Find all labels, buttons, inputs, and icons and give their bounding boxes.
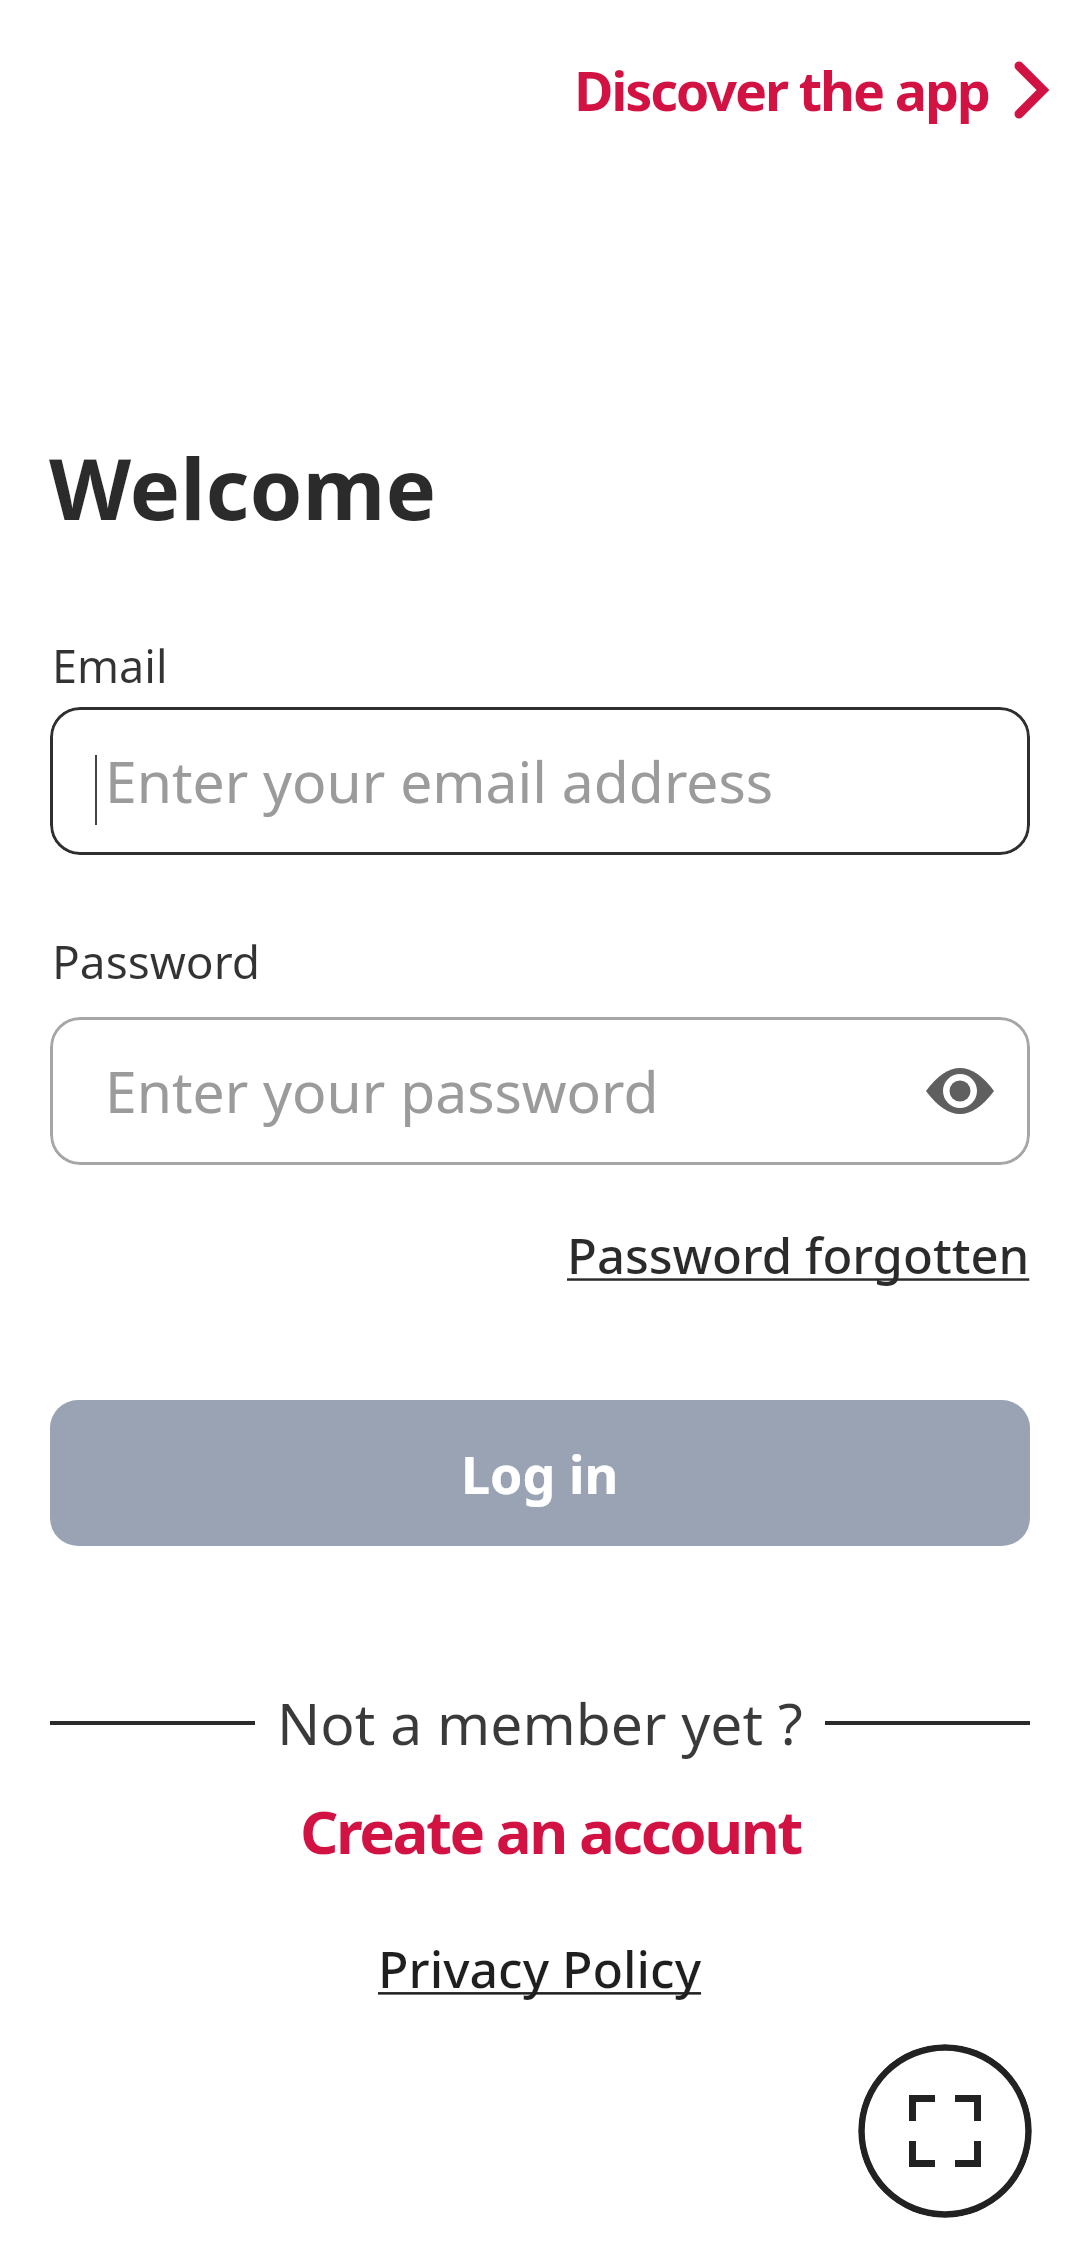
button[interactable] <box>858 2044 1032 2218</box>
staticText: Enter your password <box>105 1052 659 1130</box>
button[interactable]: Discover the app <box>574 53 1047 127</box>
staticText: Password <box>52 930 261 993</box>
button[interactable]: Enter your password <box>50 1017 1030 1165</box>
staticText: Discover the app <box>574 53 989 127</box>
button[interactable]: Log in <box>50 1400 1030 1546</box>
button[interactable]: Enter your email address <box>50 707 1030 855</box>
staticText: Log in <box>461 1438 619 1509</box>
staticText: Password forgotten <box>567 1222 1030 1289</box>
staticText: Create an account <box>300 1790 801 1872</box>
button[interactable]: Password forgotten <box>567 1222 1030 1289</box>
staticText: Enter your email address <box>105 742 774 820</box>
staticText: Email <box>52 635 168 696</box>
staticText: Not a member yet ? <box>277 1684 803 1762</box>
staticText: Privacy Policy <box>378 1935 702 2003</box>
staticText: Welcome <box>49 429 437 545</box>
button[interactable]: Privacy Policy <box>378 1935 702 2003</box>
button[interactable]: Create an account <box>300 1790 801 1872</box>
